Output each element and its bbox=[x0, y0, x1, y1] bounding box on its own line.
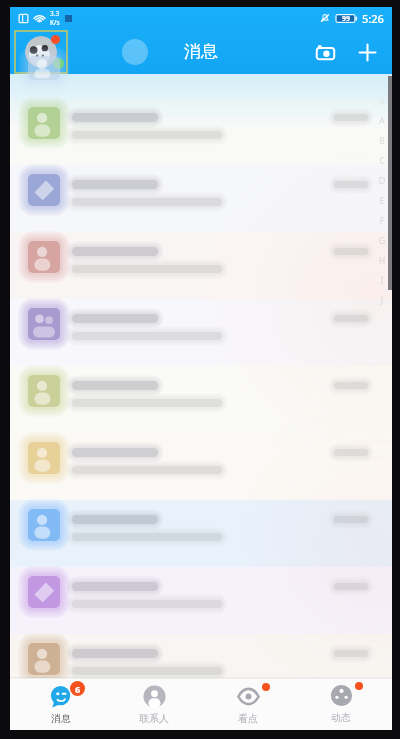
button[interactable] bbox=[10, 366, 392, 433]
staticText: 6 bbox=[75, 683, 81, 695]
button[interactable]: 6 bbox=[18, 679, 104, 729]
staticText: 联系人 bbox=[139, 712, 169, 725]
staticText: 消息 bbox=[184, 41, 218, 62]
button[interactable] bbox=[10, 299, 392, 366]
staticText: 看点 bbox=[238, 712, 258, 725]
staticText: A bbox=[377, 114, 387, 126]
button[interactable] bbox=[10, 500, 392, 567]
staticText: 动态 bbox=[331, 711, 351, 724]
button[interactable]: 看点 bbox=[205, 679, 291, 729]
staticText: E bbox=[377, 194, 387, 206]
button[interactable] bbox=[10, 98, 392, 165]
staticText: G bbox=[377, 234, 387, 246]
staticText: 99 bbox=[342, 14, 351, 24]
staticText: D bbox=[377, 174, 387, 186]
button[interactable] bbox=[10, 433, 392, 500]
button[interactable] bbox=[10, 567, 392, 634]
staticText: 游侠网 bbox=[313, 702, 370, 704]
staticText: I bbox=[377, 274, 387, 286]
staticText: J bbox=[377, 294, 387, 306]
button[interactable]: Camera / scan bbox=[308, 35, 342, 69]
staticText: 5:26 bbox=[362, 11, 384, 26]
staticText: 消息 bbox=[51, 712, 71, 725]
staticText: 3.3 bbox=[50, 9, 60, 18]
button[interactable]: Add bbox=[350, 35, 384, 69]
staticText: K/s bbox=[50, 18, 60, 27]
staticText: ☆ bbox=[377, 96, 387, 106]
staticText: F bbox=[377, 214, 387, 226]
button[interactable]: Profile bbox=[15, 31, 67, 73]
button[interactable] bbox=[10, 634, 392, 678]
button[interactable]: 动态 bbox=[298, 678, 384, 730]
staticText: C bbox=[377, 154, 387, 166]
staticText: H bbox=[377, 254, 387, 266]
button[interactable] bbox=[10, 232, 392, 299]
button[interactable] bbox=[10, 74, 392, 98]
staticText: B bbox=[377, 134, 387, 146]
button[interactable]: 联系人 bbox=[111, 679, 197, 729]
button[interactable] bbox=[10, 165, 392, 232]
